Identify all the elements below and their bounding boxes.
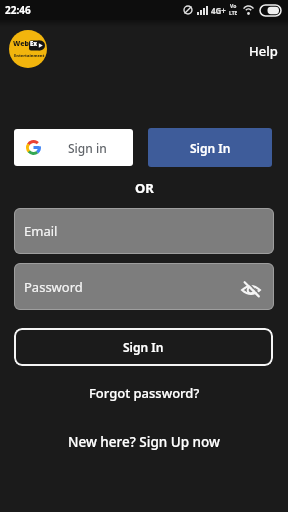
staticText: Ex	[30, 40, 38, 48]
staticText: Sign in	[68, 140, 107, 156]
staticText: Password	[24, 278, 83, 296]
staticText: 4G+	[211, 5, 226, 16]
staticText: Vo	[230, 3, 237, 10]
staticText: OR	[135, 179, 154, 197]
staticText: Email	[24, 222, 58, 240]
staticText: LTE	[229, 10, 238, 17]
staticText: Sign In	[190, 140, 231, 156]
button[interactable]: Help	[243, 36, 284, 66]
button[interactable]: Web	[9, 30, 47, 68]
button[interactable]: Email	[14, 208, 274, 254]
staticText: Entertainment	[14, 53, 45, 58]
button[interactable]: Forgot password?	[85, 380, 204, 406]
button[interactable]: Password	[14, 263, 274, 310]
staticText: Web	[13, 39, 29, 49]
staticText: Forgot password?	[89, 384, 200, 402]
staticText: 22:46	[5, 3, 31, 17]
button[interactable]: New here? Sign Up now	[64, 429, 224, 455]
staticText: New here? Sign Up now	[68, 433, 220, 451]
button[interactable]: Sign In	[148, 128, 272, 167]
staticText: Help	[249, 42, 278, 60]
button[interactable]: Sign in	[14, 129, 133, 166]
staticText: Sign In	[123, 339, 164, 355]
button[interactable]: Sign In	[14, 328, 273, 366]
